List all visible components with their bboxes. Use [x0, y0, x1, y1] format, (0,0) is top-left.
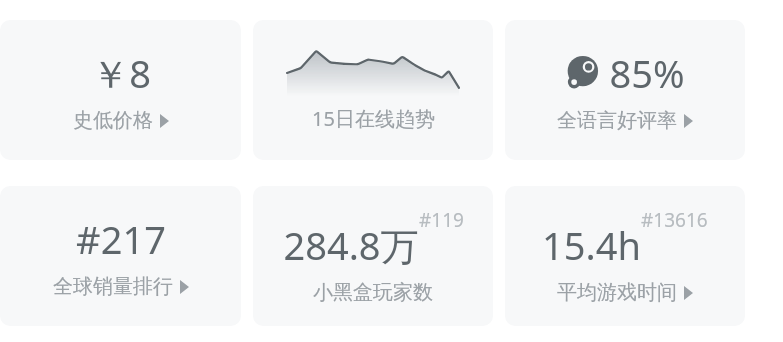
staticText: ￥8 — [91, 47, 151, 99]
button[interactable]: 85% — [505, 20, 745, 160]
staticText: 小黑盒玩家数 — [313, 280, 433, 305]
staticText: 284.8万 — [283, 219, 419, 271]
staticText: 平均游戏时间 — [557, 280, 677, 305]
staticText: #119 — [419, 207, 464, 233]
other: Open 平均游戏时间 — [684, 286, 693, 300]
staticText: 85% — [609, 47, 685, 99]
staticText: 15日在线趋势 — [312, 105, 435, 132]
button[interactable]: 15日在线趋势 — [253, 20, 493, 160]
button[interactable]: 284.8万 — [253, 186, 493, 326]
button[interactable]: 15.4h — [505, 186, 745, 326]
staticText: 史低价格 — [73, 108, 153, 133]
other: Open 史低价格 — [160, 114, 169, 128]
button[interactable]: ￥8 — [0, 20, 241, 160]
staticText: #13616 — [641, 207, 708, 233]
staticText: 全球销量排行 — [53, 274, 173, 299]
other: Open 全语言好评率 — [684, 114, 693, 128]
staticText: 15.4h — [542, 219, 641, 271]
staticText: 全语言好评率 — [557, 108, 677, 133]
other: Open 全球销量排行 — [180, 280, 189, 294]
button[interactable]: #217 — [0, 186, 241, 326]
staticText: #217 — [76, 213, 166, 265]
